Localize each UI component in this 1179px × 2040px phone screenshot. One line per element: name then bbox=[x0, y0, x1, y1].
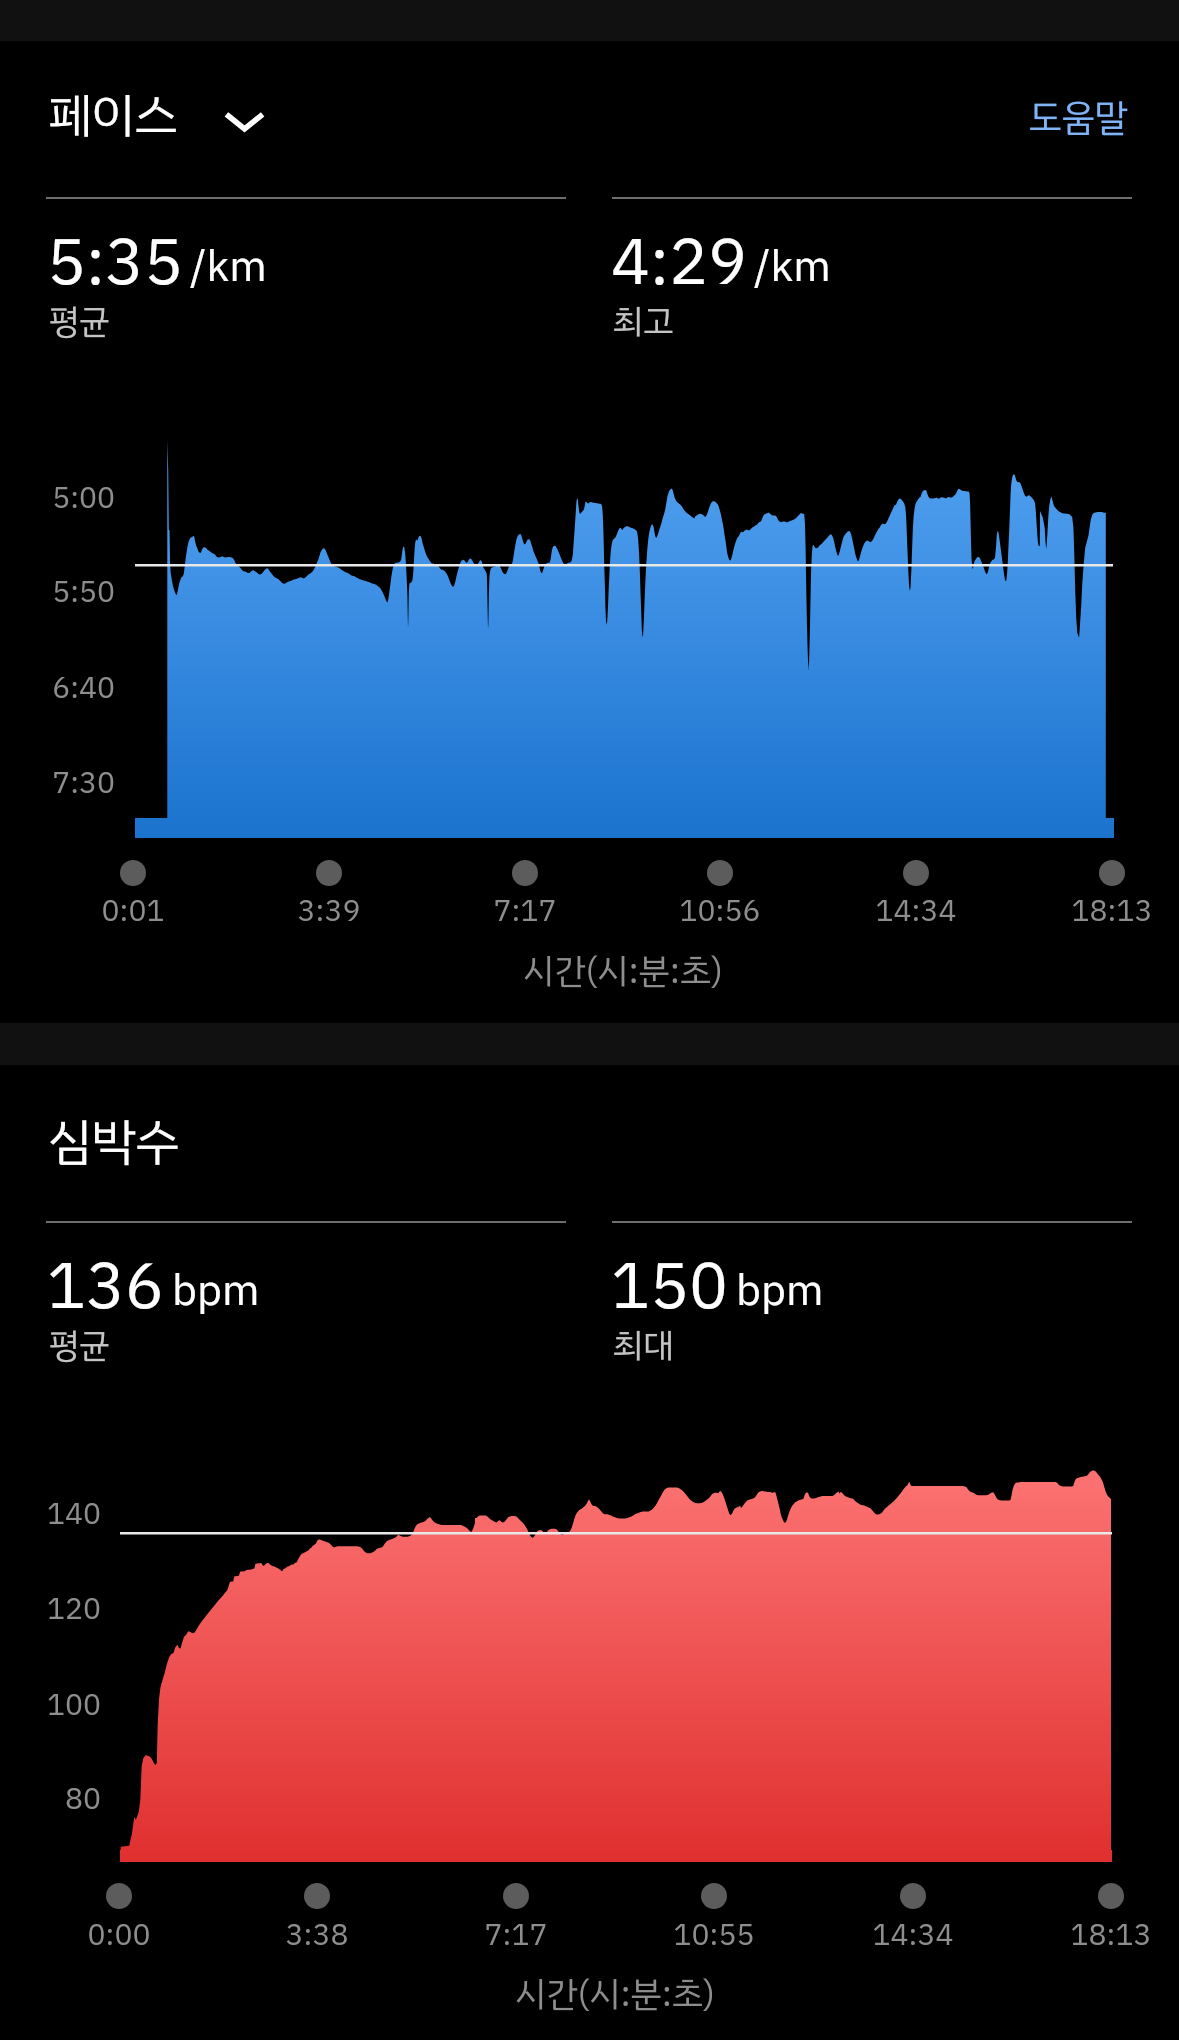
staticText: 7:17 bbox=[436, 1912, 596, 1957]
staticText: 18:13 bbox=[1032, 888, 1179, 933]
staticText: 136 bbox=[47, 1237, 165, 1335]
button[interactable]: 150 bbox=[611, 1237, 824, 1335]
staticText: 최고 bbox=[613, 296, 674, 347]
staticText: 18:13 bbox=[1031, 1912, 1179, 1957]
staticText: 7:17 bbox=[445, 888, 605, 933]
staticText: 14:34 bbox=[836, 888, 996, 933]
staticText: 페이스 bbox=[49, 80, 178, 152]
staticText: 10:56 bbox=[640, 888, 800, 933]
staticText: 6:40 bbox=[0, 665, 115, 710]
staticText: 최대 bbox=[613, 1320, 674, 1371]
staticText: 80 bbox=[0, 1776, 101, 1821]
staticText: 시간(시:분:초) bbox=[315, 1968, 915, 2021]
staticText: bpm bbox=[736, 1258, 824, 1323]
staticText: bpm bbox=[172, 1258, 260, 1323]
button[interactable]: 5:35 bbox=[47, 213, 267, 311]
staticText: 평균 bbox=[49, 296, 110, 347]
staticText: 4:29 bbox=[611, 213, 747, 311]
button[interactable]: 136 bbox=[47, 1237, 260, 1335]
staticText: 100 bbox=[0, 1682, 101, 1727]
staticText: 0:00 bbox=[39, 1912, 199, 1957]
button[interactable]: 심박수 bbox=[48, 1105, 180, 1179]
staticText: 3:39 bbox=[249, 888, 409, 933]
button[interactable]: 페이스 bbox=[30, 73, 268, 145]
staticText: 7:30 bbox=[0, 760, 115, 805]
staticText: 150 bbox=[611, 1237, 729, 1335]
staticText: 5:50 bbox=[0, 569, 115, 614]
staticText: 14:34 bbox=[833, 1912, 993, 1957]
staticText: 0:01 bbox=[53, 888, 213, 933]
staticText: 140 bbox=[0, 1491, 101, 1536]
staticText: 120 bbox=[0, 1586, 101, 1631]
staticText: 10:55 bbox=[634, 1912, 794, 1957]
staticText: 5:00 bbox=[0, 475, 115, 520]
staticText: 5:35 bbox=[47, 213, 183, 311]
staticText: /km bbox=[190, 234, 267, 299]
staticText: 도움말 bbox=[1029, 90, 1129, 146]
staticText: 시간(시:분:초) bbox=[323, 945, 923, 998]
staticText: 심박수 bbox=[48, 1105, 180, 1179]
staticText: 3:38 bbox=[237, 1912, 397, 1957]
staticText: /km bbox=[754, 234, 831, 299]
staticText: 평균 bbox=[49, 1320, 110, 1371]
button[interactable]: Help bbox=[1004, 68, 1104, 124]
button[interactable]: 4:29 bbox=[611, 213, 831, 311]
